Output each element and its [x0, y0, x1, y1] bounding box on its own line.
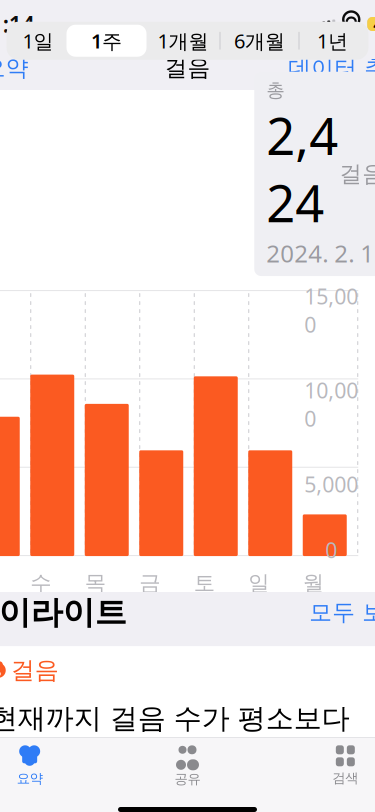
staticText: 요약 — [17, 770, 43, 787]
staticText: 10,000 — [304, 376, 358, 433]
staticText: 11:14 — [0, 9, 35, 39]
button[interactable]: 데이터 추가 — [288, 48, 375, 88]
staticText: 검색 — [332, 770, 358, 786]
button[interactable]: 요약 — [0, 48, 29, 88]
staticText: 1주 — [91, 27, 122, 54]
staticText: 현재까지 걸음 수가 평소보다 줄었습니다. — [0, 701, 350, 773]
staticText: 15,000 — [304, 282, 358, 339]
staticText: 요약 — [0, 54, 29, 82]
staticText: 공유 — [174, 771, 200, 787]
staticText: 모두 보기 — [309, 599, 375, 626]
staticText: 걸음 — [11, 656, 59, 685]
staticText: 걸음 — [339, 160, 375, 188]
staticText: 목 — [85, 570, 106, 596]
staticText: 46 — [373, 14, 375, 34]
staticText: 0 — [325, 536, 337, 564]
staticText: 토 — [194, 570, 215, 596]
staticText: 걸음 — [164, 54, 210, 82]
staticText: 5,000 — [304, 470, 358, 498]
button[interactable]: 1년 — [299, 25, 365, 57]
staticText: 월 — [303, 570, 324, 596]
staticText: 일 — [248, 570, 269, 596]
button[interactable]: 6개월 — [220, 25, 298, 57]
button[interactable]: 걸음 — [0, 646, 375, 766]
button[interactable]: 검색 — [266, 738, 375, 786]
button[interactable]: 모두 보기 — [309, 595, 375, 630]
staticText: 하이라이트 — [0, 593, 127, 632]
staticText: 계산할 수 없음 — [241, 628, 375, 656]
staticText: 6개월 — [234, 27, 285, 54]
button[interactable]: 1일 — [9, 25, 66, 57]
staticText: 2024. 2. 12. — [266, 237, 375, 269]
staticText: 1개월 — [157, 27, 208, 54]
staticText: 금 — [139, 570, 160, 596]
staticText: 2,424 — [266, 102, 338, 236]
button[interactable]: 1주 — [66, 25, 146, 57]
staticText: 수 — [30, 570, 51, 596]
button[interactable]: 1개월 — [146, 25, 219, 57]
staticText: 추세 — [0, 628, 28, 656]
staticText: 데이터 추가 — [288, 54, 375, 82]
button[interactable]: 추세 — [0, 612, 375, 672]
staticText: 1년 — [317, 27, 348, 54]
staticText: 1일 — [22, 27, 53, 54]
staticText: 총 — [266, 79, 285, 102]
button[interactable]: 공유 — [109, 737, 266, 787]
button[interactable]: 요약 — [0, 737, 109, 787]
